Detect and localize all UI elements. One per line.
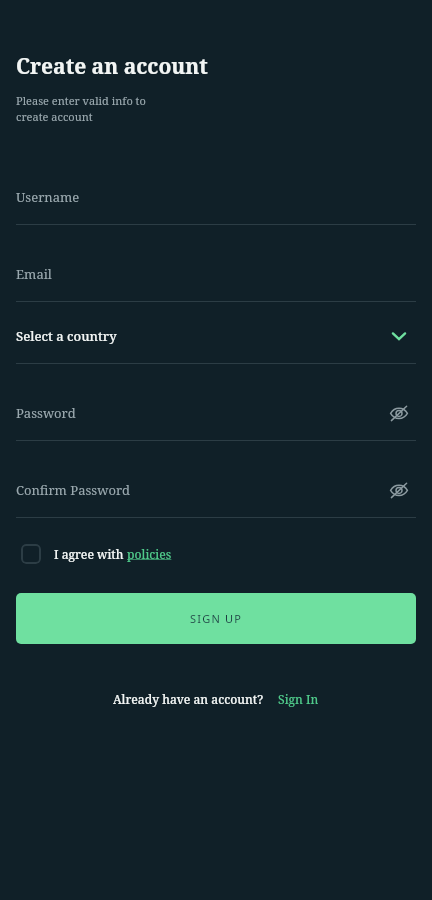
staticText: SIGN UP bbox=[190, 611, 243, 626]
staticText: Email bbox=[16, 265, 52, 283]
staticText: Sign In bbox=[278, 691, 319, 707]
staticText: Create an account bbox=[16, 52, 208, 81]
button[interactable]: Select a country bbox=[382, 319, 416, 353]
staticText: Confirm Password bbox=[16, 481, 130, 499]
button[interactable]: Email bbox=[16, 246, 416, 302]
button[interactable]: Select a country bbox=[16, 308, 416, 364]
button[interactable]: Toggle password visibility bbox=[382, 473, 416, 507]
staticText: Please enter valid info to create accoun… bbox=[16, 93, 146, 125]
button[interactable]: SIGN UP bbox=[16, 593, 416, 644]
staticText: I agree with bbox=[54, 546, 127, 562]
button[interactable]: Password bbox=[16, 385, 416, 441]
button[interactable]: Toggle password visibility bbox=[382, 396, 416, 430]
staticText: Password bbox=[16, 404, 76, 422]
button[interactable]: I agree with bbox=[16, 536, 172, 572]
staticText: Select a country bbox=[16, 327, 117, 345]
staticText: Username bbox=[16, 188, 80, 206]
button[interactable]: Username bbox=[16, 169, 416, 225]
staticText: Already have an account? bbox=[113, 691, 264, 707]
staticText: policies bbox=[127, 546, 172, 562]
button[interactable]: Confirm Password bbox=[16, 462, 416, 518]
button[interactable]: Sign In bbox=[278, 691, 319, 707]
